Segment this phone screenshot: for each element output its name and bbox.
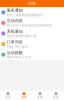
button[interactable]: 活动提醒: [0, 49, 64, 60]
staticText: 消息: [21, 95, 27, 99]
staticText: 消息: [28, 1, 36, 6]
button[interactable]: 我的: [48, 92, 64, 99]
button[interactable]: 系统通知: [0, 28, 64, 39]
staticText: 我的: [53, 95, 59, 99]
staticText: 系统通知: [7, 29, 23, 34]
staticText: 系统升级维护通知公告: [7, 34, 37, 38]
staticText: 有人评论了你发布的动态内容信息: [7, 24, 52, 27]
staticText: 活动提醒: [7, 50, 23, 55]
staticText: 互动消息: [7, 18, 23, 23]
staticText: 订单消息: [7, 40, 23, 44]
button[interactable]: 发现: [32, 92, 48, 99]
button[interactable]: 首页: [0, 92, 16, 99]
button[interactable]: 订单消息: [0, 39, 64, 49]
staticText: 服务通知: [7, 8, 23, 13]
button[interactable]: 消息: [16, 92, 32, 99]
staticText: 发现: [37, 95, 43, 99]
staticText: 限时活动马上开启: [7, 55, 31, 59]
button[interactable]: 服务通知: [0, 7, 64, 18]
staticText: 您的订单已发货: [7, 45, 28, 49]
button[interactable]: 互动消息: [0, 18, 64, 28]
staticText: 首页: [5, 95, 11, 99]
staticText: 您有一条新的服务提醒消息: [7, 13, 43, 17]
